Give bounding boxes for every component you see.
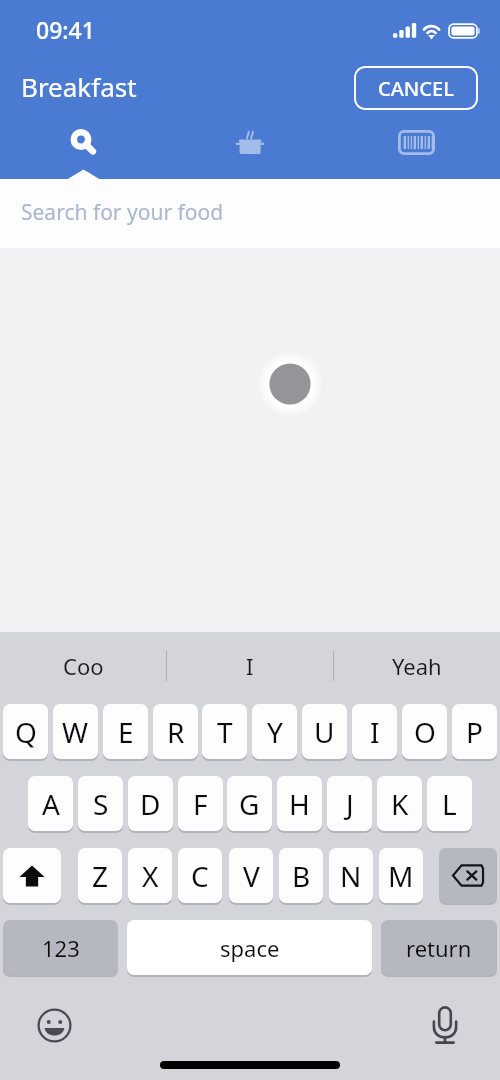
button[interactable]: A <box>28 776 73 831</box>
staticText: W <box>62 713 89 751</box>
button[interactable]: Y <box>252 704 297 759</box>
button[interactable]: W <box>53 704 98 759</box>
staticText: B <box>292 857 311 895</box>
staticText: V <box>243 857 260 895</box>
button[interactable]: B <box>279 848 323 903</box>
button[interactable]: C <box>178 848 222 903</box>
button[interactable]: N <box>329 848 373 903</box>
staticText: Coo <box>63 651 104 681</box>
button[interactable]: O <box>402 704 447 759</box>
button[interactable]: F <box>178 776 223 831</box>
staticText: D <box>140 785 161 823</box>
button[interactable]: Dictation <box>430 1004 460 1048</box>
button[interactable]: X <box>128 848 172 903</box>
button[interactable]: I <box>352 704 397 759</box>
staticText: CANCEL <box>378 75 454 102</box>
button[interactable]: L <box>427 776 472 831</box>
staticText: Z <box>92 857 109 895</box>
button[interactable]: J <box>327 776 372 831</box>
staticText: X <box>142 857 159 895</box>
staticText: Yeah <box>392 651 442 681</box>
button[interactable]: Scan barcode <box>333 120 500 179</box>
button[interactable]: T <box>202 704 247 759</box>
button[interactable]: space <box>127 920 372 975</box>
staticText: R <box>167 713 185 751</box>
staticText: S <box>93 785 109 823</box>
staticText: P <box>466 713 483 751</box>
staticText: 123 <box>42 933 80 963</box>
button[interactable]: G <box>227 776 272 831</box>
button[interactable]: H <box>277 776 322 831</box>
button[interactable]: Q <box>3 704 48 759</box>
staticText: O <box>414 713 436 751</box>
button[interactable]: R <box>153 704 198 759</box>
button[interactable]: Z <box>78 848 122 903</box>
button[interactable]: Backspace <box>439 848 497 903</box>
button[interactable]: Shift <box>3 848 61 903</box>
staticText: C <box>191 857 209 895</box>
button[interactable]: Coo <box>0 632 166 700</box>
staticText: I <box>246 651 254 681</box>
staticText: E <box>118 713 134 751</box>
staticText: 09:41 <box>36 14 95 45</box>
button[interactable]: Yeah <box>334 632 500 700</box>
button[interactable]: Recipes <box>166 120 333 179</box>
button[interactable]: D <box>128 776 173 831</box>
staticText: I <box>370 713 380 751</box>
button[interactable]: return <box>381 920 497 975</box>
staticText: N <box>340 857 362 895</box>
button[interactable]: Search for your food <box>0 179 500 248</box>
staticText: return <box>406 933 472 963</box>
button[interactable]: V <box>229 848 273 903</box>
staticText: T <box>217 713 233 751</box>
button[interactable]: I <box>167 632 333 700</box>
staticText: space <box>220 933 280 963</box>
staticText: F <box>193 785 208 823</box>
button[interactable]: Search <box>0 120 166 179</box>
button[interactable]: M <box>379 848 423 903</box>
staticText: K <box>391 785 409 823</box>
staticText: Breakfast <box>21 69 137 104</box>
staticText: G <box>239 785 260 823</box>
staticText: U <box>314 713 335 751</box>
staticText: Q <box>15 713 37 751</box>
staticText: M <box>388 857 414 895</box>
staticText: Y <box>267 713 283 751</box>
button[interactable]: P <box>452 704 497 759</box>
staticText: Search for your food <box>21 198 224 227</box>
button[interactable]: K <box>377 776 422 831</box>
button[interactable]: CANCEL <box>354 66 478 110</box>
button[interactable]: U <box>302 704 347 759</box>
staticText: L <box>442 785 457 823</box>
staticText: J <box>346 785 354 823</box>
button[interactable]: E <box>103 704 148 759</box>
button[interactable]: Emoji keyboard <box>37 1008 72 1043</box>
staticText: A <box>42 785 60 823</box>
staticText: H <box>289 785 310 823</box>
button[interactable]: 123 <box>3 920 118 975</box>
button[interactable]: S <box>78 776 123 831</box>
